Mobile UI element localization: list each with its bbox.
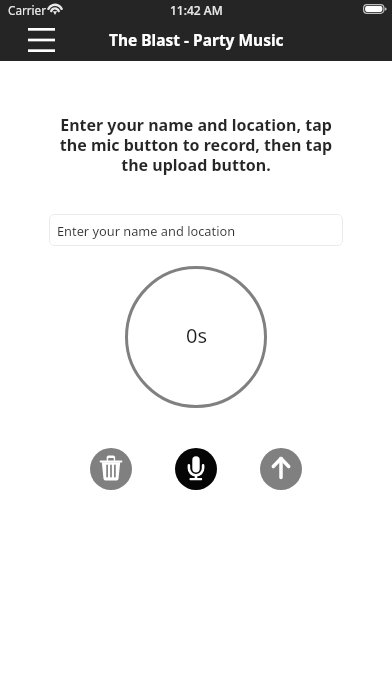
staticText: The Blast - Party Music (109, 29, 284, 50)
button[interactable]: Delete recording (90, 448, 132, 490)
staticText: Enter your name and location (57, 222, 236, 239)
button[interactable]: Enter your name and location (49, 214, 343, 246)
button[interactable]: Upload recording (260, 448, 302, 490)
button[interactable]: Menu (22, 22, 61, 58)
staticText: 11:42 AM (170, 2, 223, 18)
staticText: Enter your name and location, tap the mi… (50, 114, 342, 176)
button[interactable]: Record (175, 448, 217, 490)
staticText: Carrier (8, 2, 47, 18)
staticText: 0s (186, 322, 208, 349)
